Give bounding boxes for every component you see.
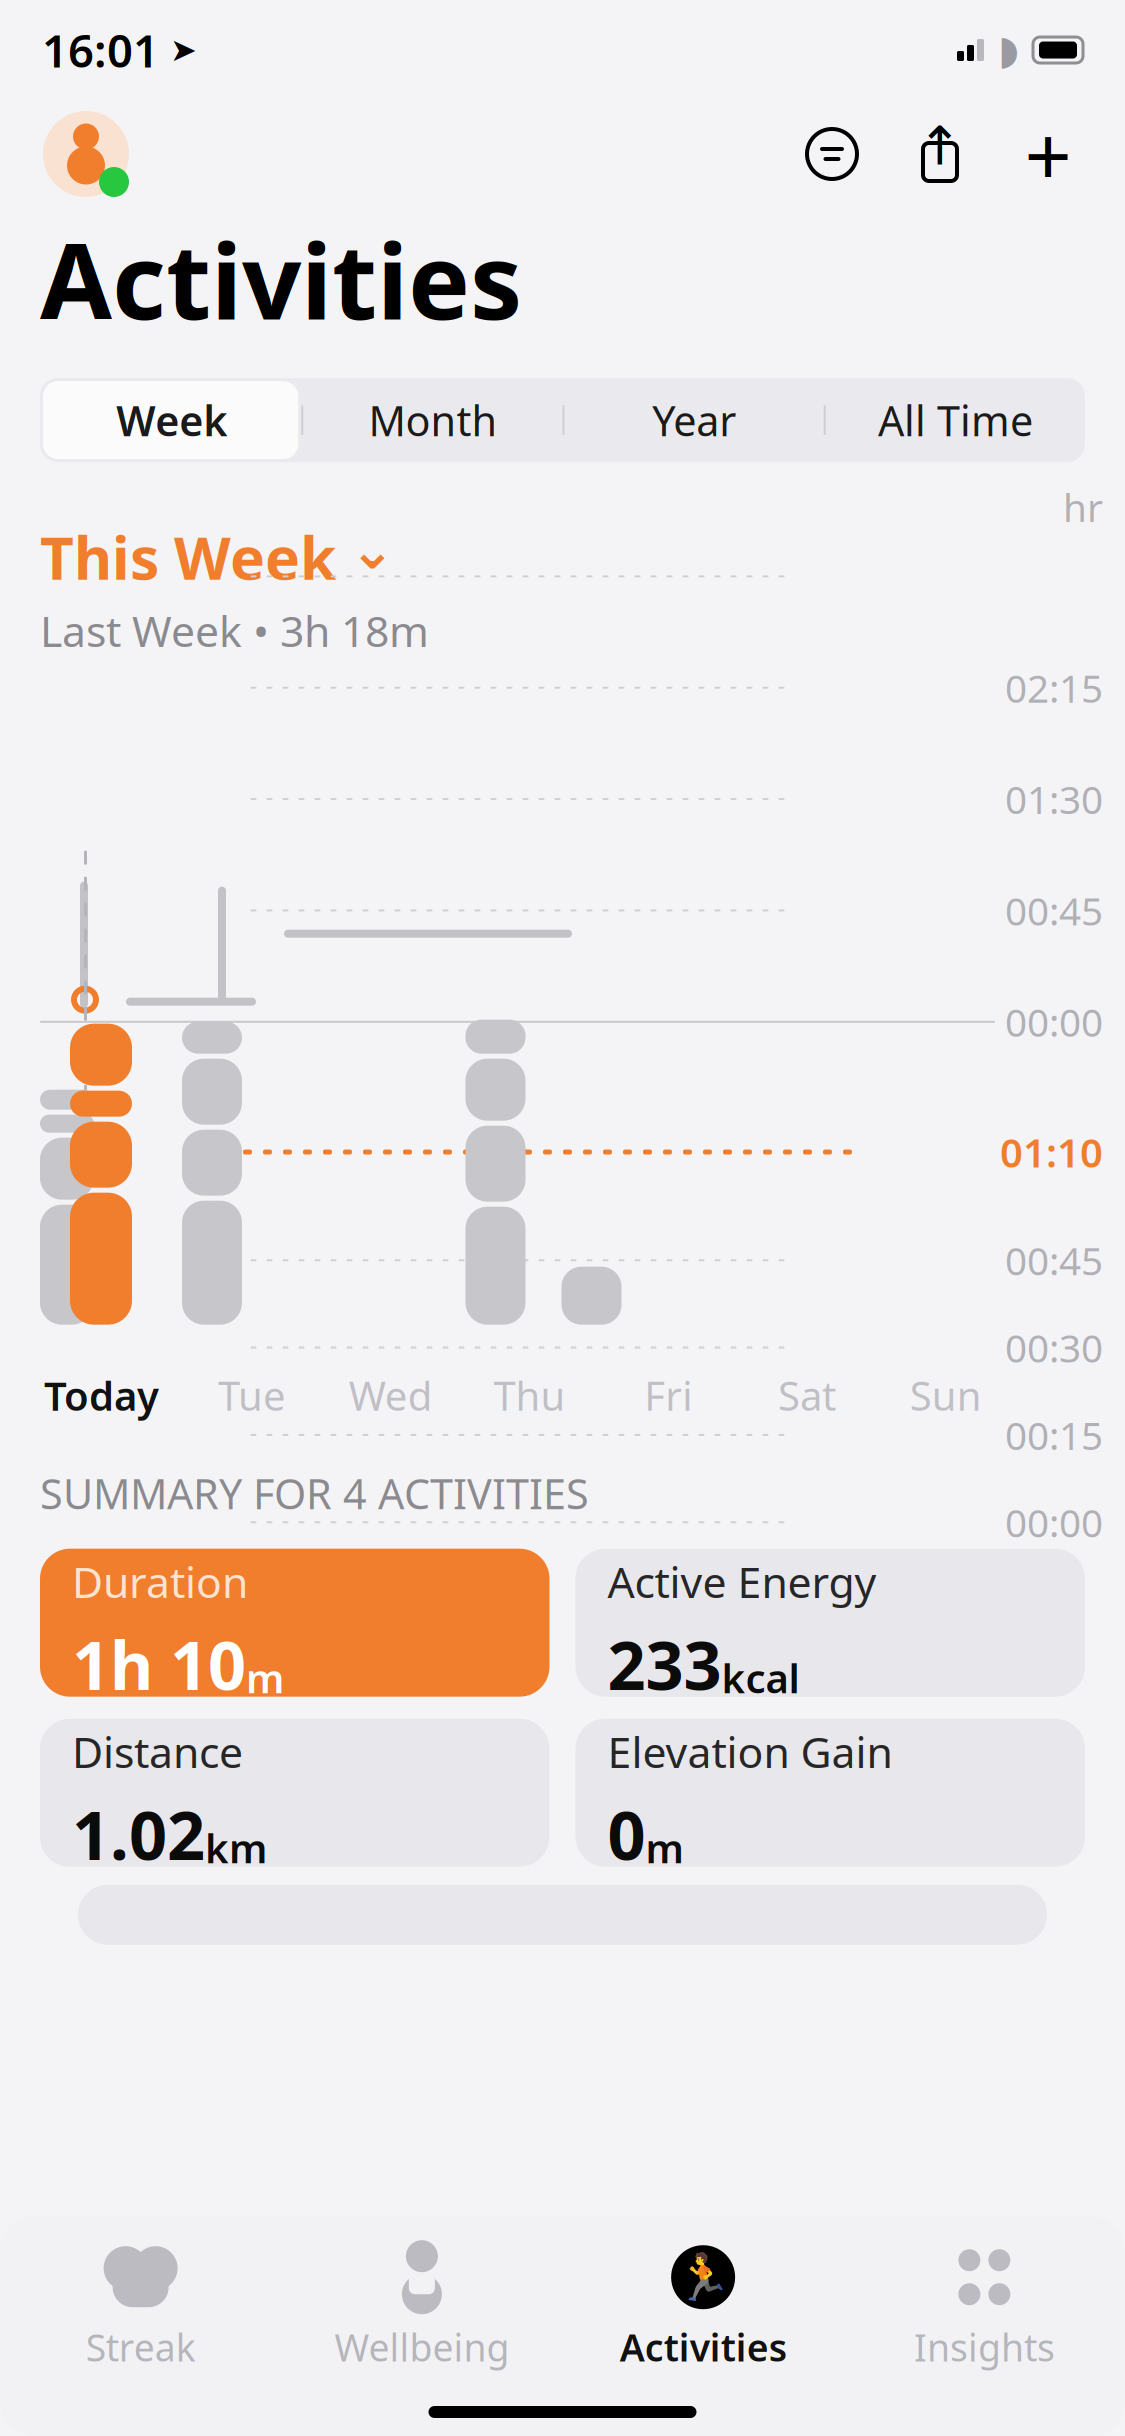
staticText: 00:00 xyxy=(1005,996,1103,1047)
staticText: 00:45 xyxy=(1005,1235,1103,1286)
button[interactable]: Insights xyxy=(844,2246,1125,2370)
staticText: Elevation Gain xyxy=(607,1723,892,1780)
button[interactable]: Share xyxy=(869,117,977,191)
staticText: This Week xyxy=(40,518,336,596)
button[interactable]: 🏃 xyxy=(562,2246,844,2370)
staticText: Wed xyxy=(349,1369,433,1422)
staticText: km xyxy=(205,1821,267,1874)
staticText: Insights xyxy=(914,2322,1055,2372)
staticText: All Time xyxy=(878,393,1033,448)
button[interactable]: Distance xyxy=(40,1719,549,1867)
button[interactable]: Streak xyxy=(0,2246,281,2370)
button[interactable]: Active Energy xyxy=(575,1549,1085,1697)
staticText: Activities xyxy=(40,210,522,348)
staticText: 1.02 xyxy=(72,1790,205,1878)
staticText: Duration xyxy=(72,1553,248,1610)
button[interactable]: Elevation Gain xyxy=(575,1719,1085,1867)
staticText: 🏃 xyxy=(675,2251,731,2303)
button[interactable]: Month xyxy=(301,378,562,462)
staticText: Tue xyxy=(218,1369,286,1422)
button[interactable]: Wellbeing xyxy=(281,2246,562,2370)
staticText: m xyxy=(246,1651,284,1704)
staticText: Week xyxy=(116,393,227,448)
staticText: Distance xyxy=(72,1723,243,1780)
staticText: 00:15 xyxy=(1005,1409,1103,1461)
staticText: ⌄ xyxy=(350,520,395,580)
button[interactable]: This Week xyxy=(40,518,1085,596)
staticText: hr xyxy=(1063,481,1103,533)
staticText: 00:45 xyxy=(1005,885,1103,936)
staticText: m xyxy=(645,1821,683,1874)
button[interactable]: All Time xyxy=(824,378,1085,462)
staticText: Year xyxy=(652,393,736,448)
staticText: ◗ xyxy=(998,27,1019,73)
staticText: 01:30 xyxy=(1005,773,1103,825)
staticText: 0 xyxy=(607,1790,645,1878)
staticText: 01:10 xyxy=(1000,1125,1103,1179)
button[interactable]: Duration xyxy=(40,1549,549,1697)
staticText: kcal xyxy=(721,1651,799,1704)
staticText: Last Week • 3h 18m xyxy=(40,602,429,659)
staticText: + xyxy=(1024,99,1071,209)
staticText: 16:01 xyxy=(42,20,159,80)
staticText: Fri xyxy=(644,1369,692,1422)
staticText: Sat xyxy=(778,1369,836,1422)
staticText: Streak xyxy=(86,2322,196,2372)
staticText: Active Energy xyxy=(607,1553,876,1610)
staticText: Thu xyxy=(493,1369,565,1422)
staticText: Today xyxy=(44,1369,159,1422)
staticText: Month xyxy=(368,393,497,448)
staticText: 1h 10 xyxy=(72,1620,246,1708)
staticText: ↑ xyxy=(917,116,962,176)
button[interactable]: Year xyxy=(562,378,824,462)
staticText: 00:30 xyxy=(1005,1322,1103,1373)
staticText: 00:00 xyxy=(1005,1497,1103,1548)
staticText: 233 xyxy=(607,1620,721,1708)
button[interactable]: Profile xyxy=(40,108,132,200)
staticText: Sun xyxy=(910,1369,982,1422)
button[interactable]: Week xyxy=(40,378,301,462)
button[interactable]: Filter xyxy=(795,117,869,191)
staticText: ➤ xyxy=(159,32,197,68)
staticText: Wellbeing xyxy=(334,2322,509,2372)
staticText: 02:15 xyxy=(1005,662,1103,713)
button[interactable]: Add xyxy=(977,117,1085,191)
staticText: Activities xyxy=(620,2322,787,2372)
staticText: SUMMARY FOR 4 ACTIVITIES xyxy=(40,1466,589,1521)
